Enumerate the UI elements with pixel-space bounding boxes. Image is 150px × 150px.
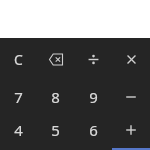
button[interactable]: C <box>0 38 37 80</box>
button[interactable]: Multiply <box>112 38 150 80</box>
button[interactable]: 7 <box>0 80 37 113</box>
button[interactable]: Plus <box>112 113 150 146</box>
button[interactable]: Backspace <box>37 38 74 80</box>
staticText: C <box>14 50 23 69</box>
button[interactable]: 4 <box>0 113 37 146</box>
button[interactable]: 8 <box>37 80 74 113</box>
staticText: 6 <box>89 120 98 140</box>
button[interactable]: 9 <box>74 80 112 113</box>
staticText: 9 <box>89 87 98 107</box>
staticText: 4 <box>14 120 23 140</box>
staticText: 5 <box>51 120 60 140</box>
button[interactable]: 5 <box>37 113 74 146</box>
staticText: 8 <box>51 87 60 107</box>
staticText: 7 <box>14 87 23 107</box>
button[interactable]: Minus <box>112 80 150 113</box>
button[interactable]: 6 <box>74 113 112 146</box>
button[interactable]: Divide <box>74 38 112 80</box>
